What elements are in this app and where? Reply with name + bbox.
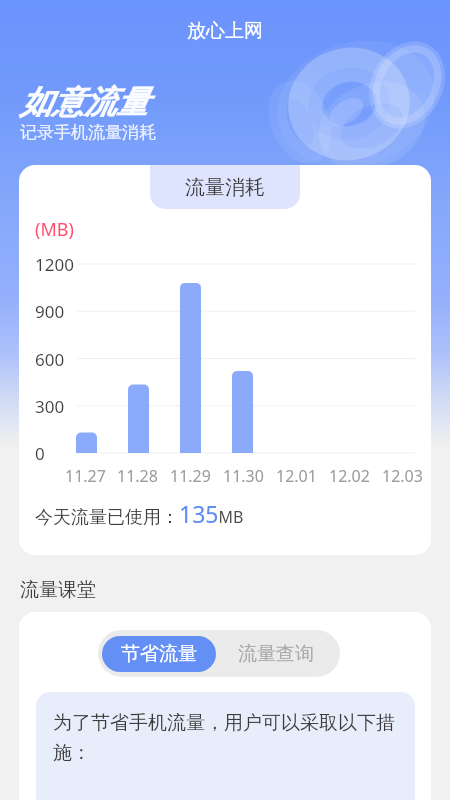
- staticText: 11.27: [65, 465, 106, 487]
- button[interactable]: 节省流量: [102, 636, 216, 672]
- staticText: 节省流量: [121, 642, 197, 666]
- staticText: 11.28: [117, 465, 158, 487]
- staticText: 1200: [35, 253, 74, 276]
- staticText: 流量消耗: [185, 175, 265, 200]
- staticText: 0: [35, 442, 45, 465]
- staticText: 为了节省手机流量，用户可以采取以下措施： 使用WiFi：尽量在有WiFi的地方使…: [53, 711, 398, 800]
- staticText: 今天流量已使用：135MB: [35, 498, 244, 529]
- button[interactable]: 流量消耗: [150, 165, 300, 209]
- staticText: 11.29: [170, 465, 211, 487]
- staticText: 流量课堂: [20, 578, 96, 602]
- staticText: 600: [35, 348, 65, 371]
- staticText: 12.02: [329, 465, 370, 487]
- staticText: 如意流量: [20, 82, 148, 122]
- staticText: (MB): [35, 217, 74, 242]
- staticText: 流量查询: [238, 642, 314, 666]
- button[interactable]: 放心上网: [0, 0, 450, 62]
- button[interactable]: 流量查询: [216, 636, 336, 672]
- staticText: 12.01: [276, 465, 317, 487]
- staticText: 记录手机流量消耗: [20, 122, 156, 143]
- staticText: 12.03: [382, 465, 423, 487]
- staticText: 11.30: [223, 465, 264, 487]
- staticText: 放心上网: [187, 19, 263, 43]
- staticText: 900: [35, 300, 65, 323]
- staticText: 300: [35, 395, 65, 418]
